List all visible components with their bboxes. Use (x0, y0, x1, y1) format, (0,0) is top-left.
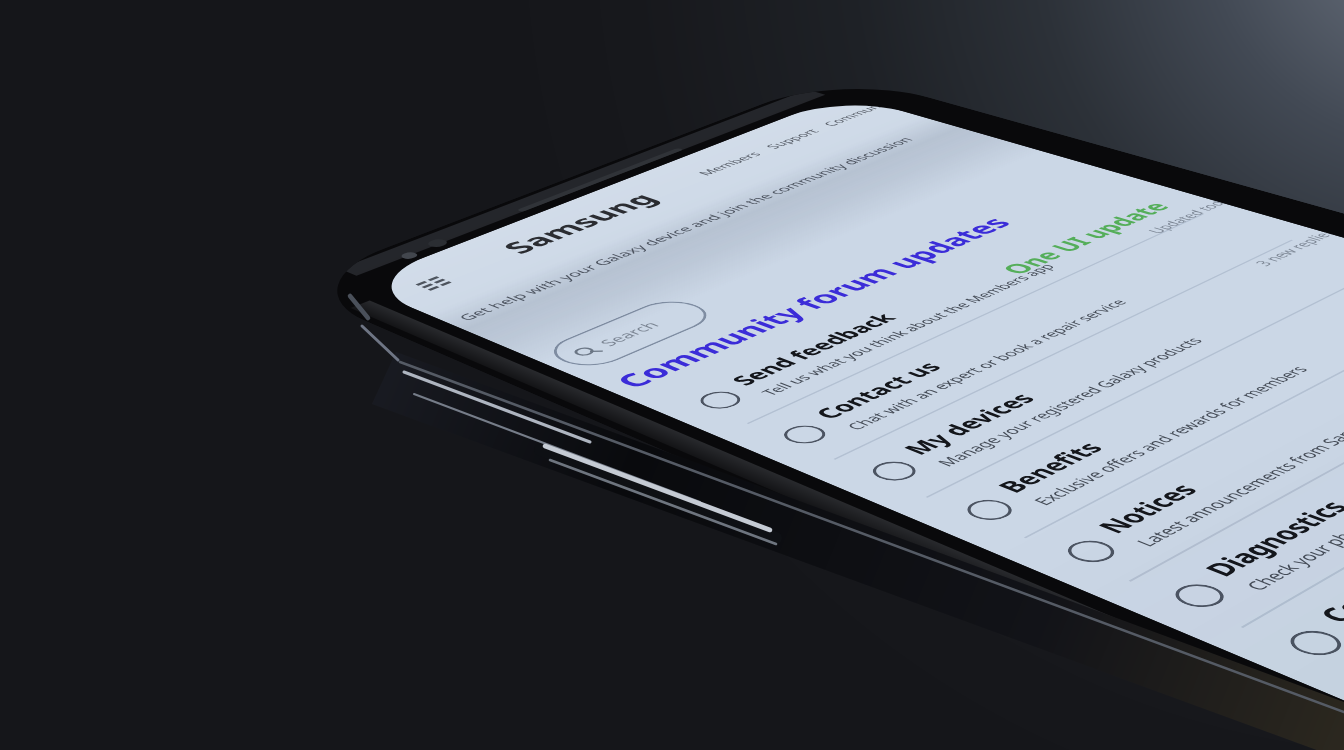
staticText: Community forum updates (604, 213, 1021, 393)
staticText: One UI update (992, 198, 1178, 278)
button[interactable]: Settings (1333, 381, 1344, 749)
button[interactable]: Notices (996, 285, 1344, 597)
staticText: Samsung (491, 189, 668, 258)
staticText: Search (594, 319, 664, 349)
button[interactable]: My devices (806, 229, 1344, 512)
staticText: Check your phone hardware and battery (1238, 438, 1344, 593)
button[interactable]: Benefits (898, 256, 1344, 553)
staticText: Community (1307, 537, 1344, 627)
staticText: Manage your registered Galaxy products (931, 335, 1208, 469)
button[interactable]: Search (538, 295, 722, 372)
staticText: Benefits (987, 438, 1112, 497)
staticText: Get help with your Galaxy device and joi… (453, 135, 918, 323)
button[interactable]: Community (1213, 347, 1344, 695)
staticText: Latest announcements from Samsung (1129, 409, 1344, 549)
staticText: Send feedback (723, 310, 903, 389)
staticText: Notices (1087, 479, 1207, 537)
staticText: Updated today (1142, 199, 1229, 235)
staticText: Chat with an expert or book a repair ser… (841, 297, 1132, 432)
staticText: 3 new replies (1249, 229, 1337, 268)
staticText: Exclusive offers and rewards for members (1027, 363, 1313, 508)
button[interactable]: Diagnostics (1101, 315, 1344, 644)
staticText: Contact us (806, 358, 949, 422)
button[interactable]: Menu (403, 271, 467, 297)
staticText: My devices (894, 389, 1043, 458)
button[interactable]: Contact us (719, 204, 1314, 473)
staticText: Tell us what you think about the Members… (756, 262, 1059, 398)
staticText: Diagnostics (1193, 496, 1344, 581)
button[interactable]: Send feedback (638, 180, 1225, 437)
staticText: Members Support Community (693, 102, 888, 177)
